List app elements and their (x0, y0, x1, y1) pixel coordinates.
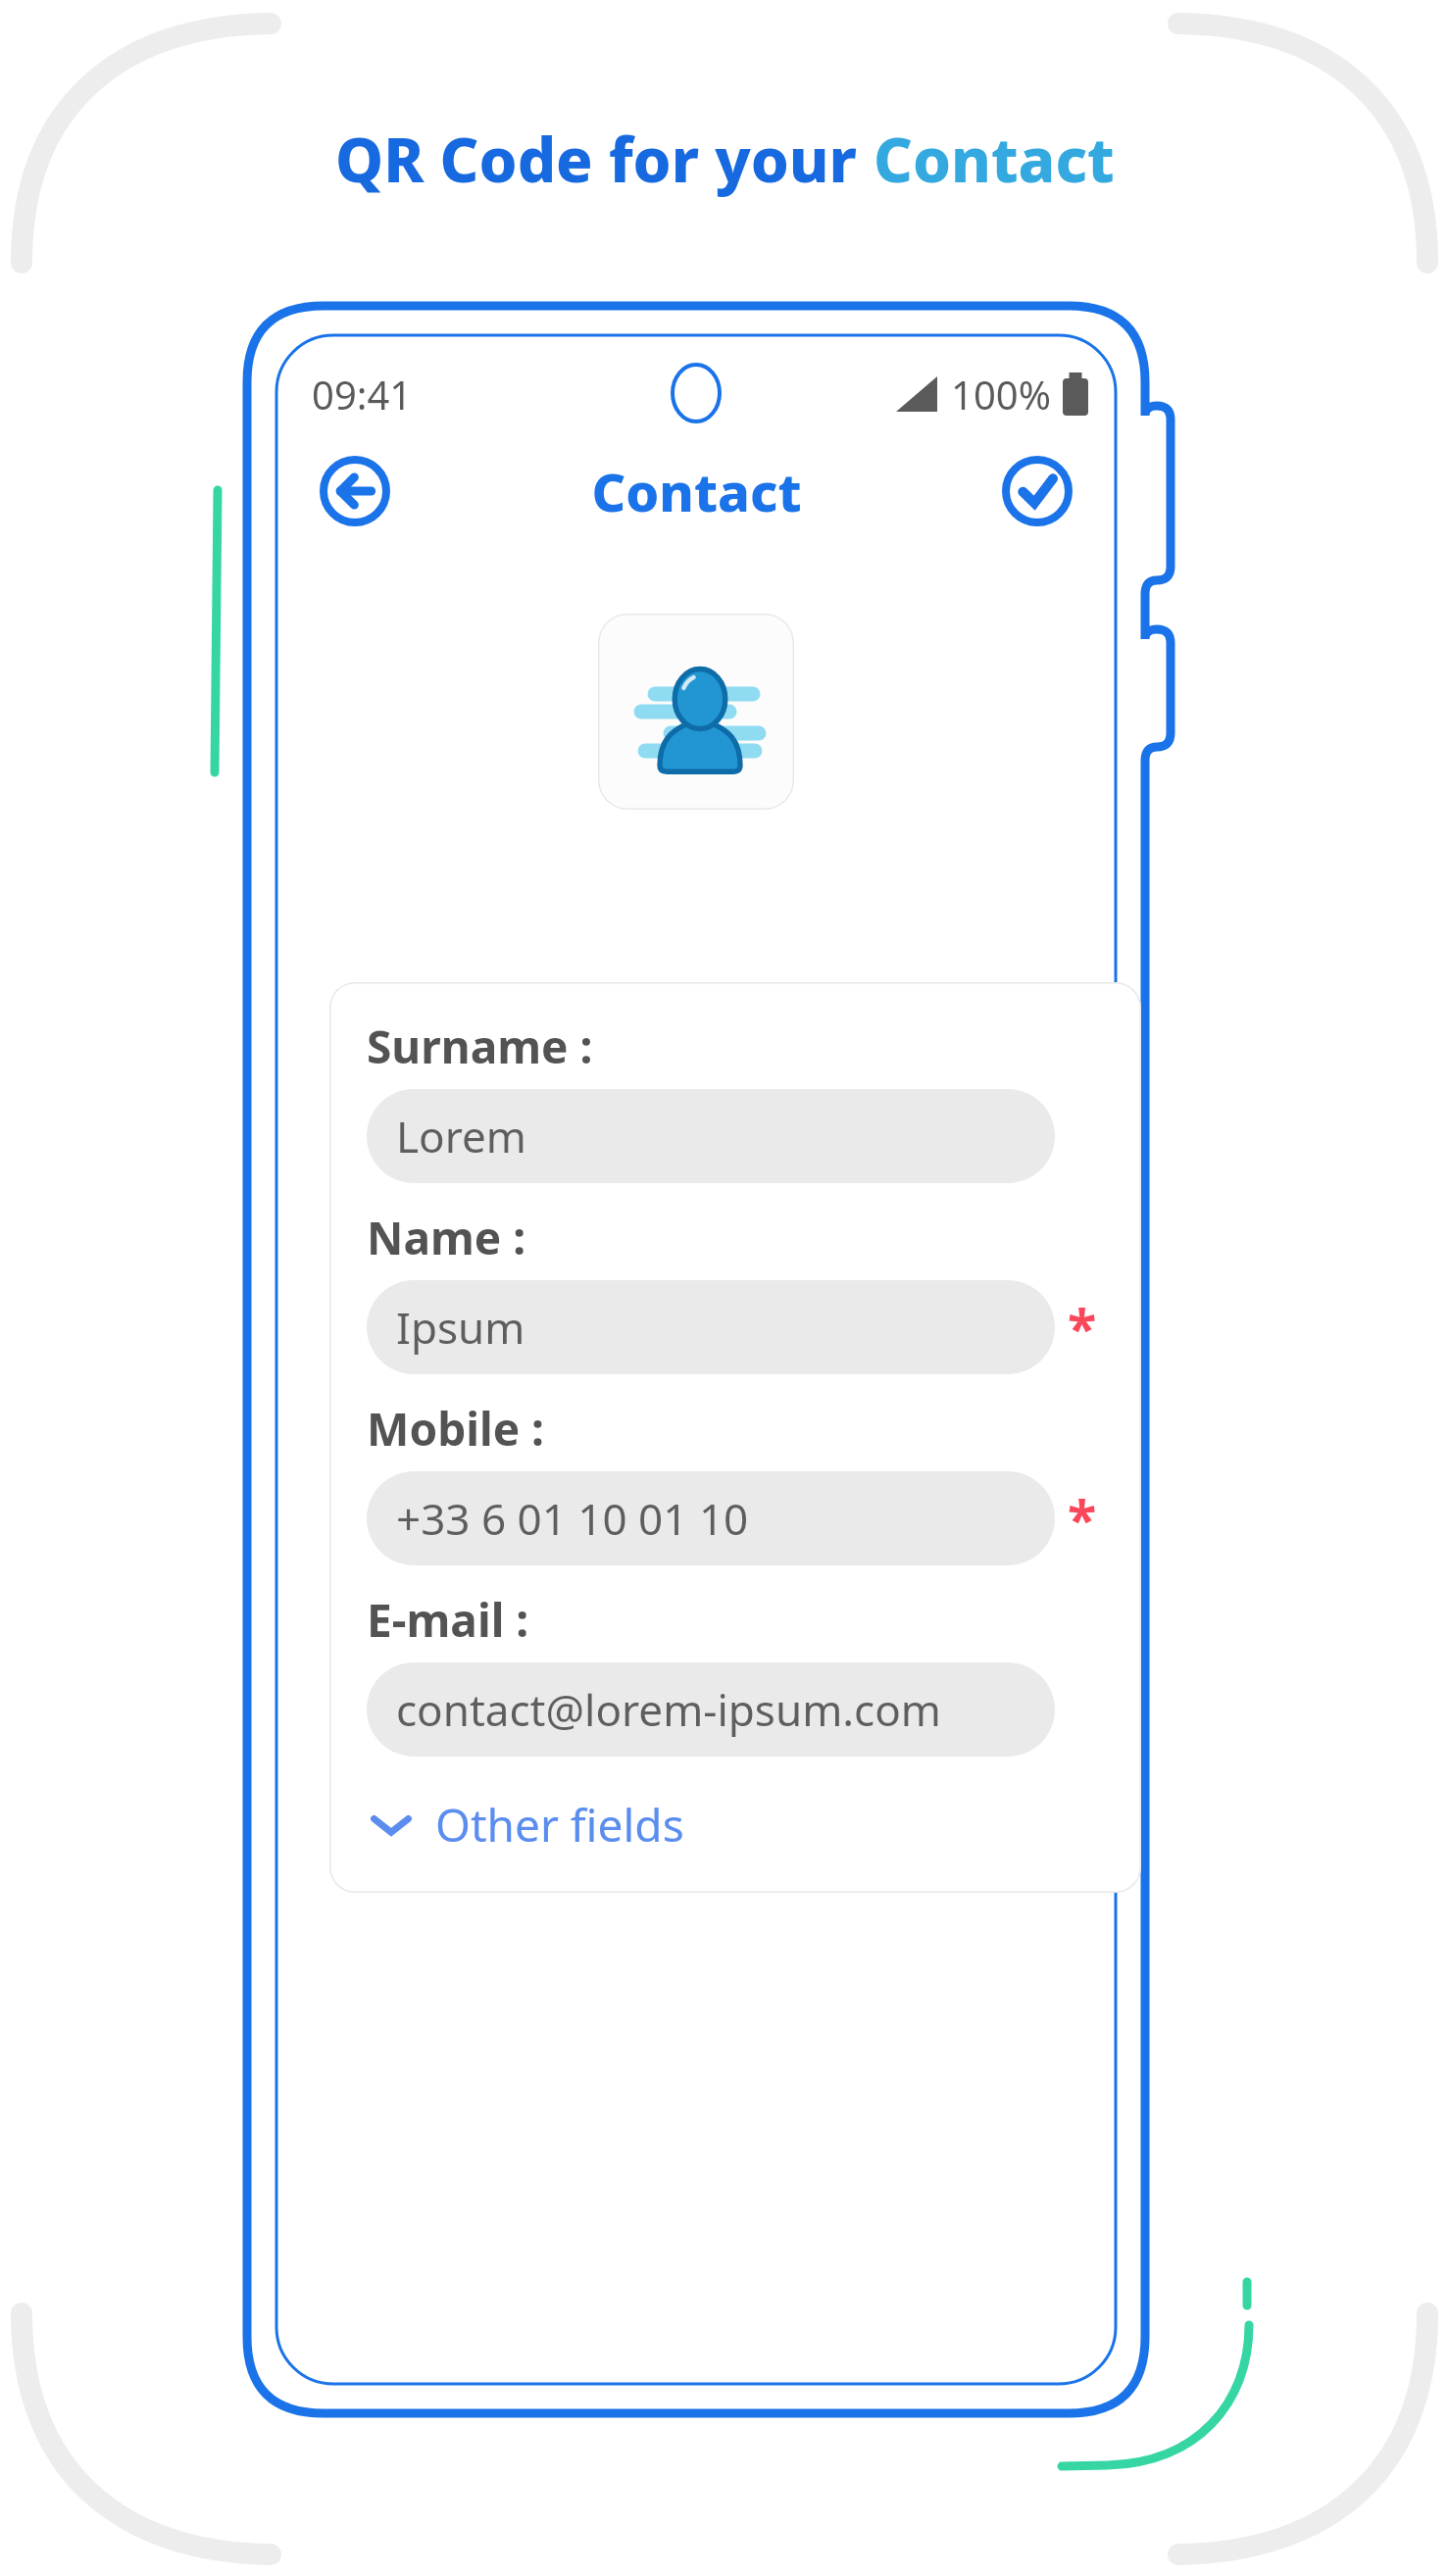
staticText: 09:41 (312, 368, 413, 421)
button[interactable]: Lorem (367, 1089, 1055, 1183)
staticText: QR Code for your (335, 118, 874, 200)
staticText: Name : (367, 1207, 526, 1268)
staticText: Other fields (435, 1794, 684, 1856)
staticText: Mobile : (367, 1398, 545, 1460)
staticText: Contact (591, 455, 802, 527)
button[interactable]: Validate (1002, 456, 1073, 526)
staticText: Surname : (367, 1016, 593, 1077)
button[interactable]: Ipsum (367, 1280, 1055, 1374)
button[interactable]: contact@lorem-ipsum.com (367, 1662, 1055, 1757)
button[interactable]: +33 6 01 10 01 10 (367, 1471, 1055, 1565)
staticText: E-mail : (367, 1589, 529, 1651)
staticText: +33 6 01 10 01 10 (396, 1489, 749, 1548)
staticText: * (1068, 1291, 1097, 1363)
staticText: Lorem (396, 1107, 526, 1165)
staticText: 100% (951, 368, 1051, 421)
button[interactable]: Other fields (367, 1788, 686, 1861)
staticText: contact@lorem-ipsum.com (396, 1680, 941, 1739)
button[interactable]: Back (320, 456, 390, 526)
staticText: * (1068, 1482, 1097, 1555)
staticText: Contact (874, 118, 1115, 200)
staticText: Ipsum (396, 1298, 525, 1357)
